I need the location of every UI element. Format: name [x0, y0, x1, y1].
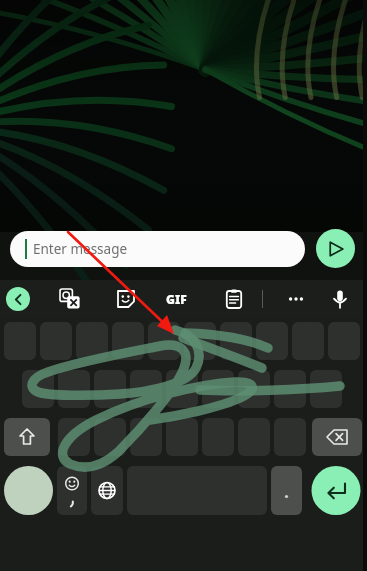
button[interactable]: Toolbar action — [58, 287, 82, 311]
button[interactable]: Back — [6, 287, 30, 311]
button[interactable]: GIF — [166, 291, 187, 307]
button[interactable]: Toolbar action — [328, 287, 352, 311]
button[interactable]: Toolbar action — [114, 287, 138, 311]
staticText: Enter message — [33, 240, 128, 258]
button[interactable]: More options — [284, 287, 308, 311]
button[interactable]: Enter message — [10, 231, 305, 267]
staticText: GIF — [166, 291, 187, 307]
button[interactable]: Toolbar action — [222, 287, 246, 311]
button[interactable]: Send — [316, 229, 355, 268]
